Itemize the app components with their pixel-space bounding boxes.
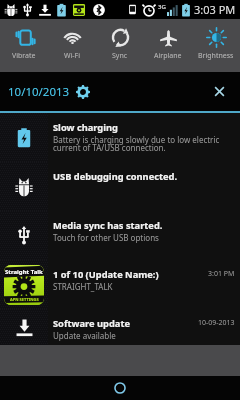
button[interactable]: Media sync has started.: [0, 211, 240, 260]
staticText: STRAIGHT_TALK: [53, 281, 113, 292]
staticText: Airplane: [154, 51, 182, 61]
staticText: Wi-Fi: [64, 51, 81, 61]
button[interactable]: Home: [111, 379, 129, 397]
staticText: 3:03 PM: [194, 2, 236, 17]
button[interactable]: Airplane: [144, 19, 192, 72]
staticText: USB debugging connected.: [53, 170, 178, 183]
staticText: 3:01 PM: [208, 269, 235, 279]
staticText: 3G: [158, 3, 166, 11]
button[interactable]: Slow charging: [0, 113, 240, 162]
staticText: Battery is charging slowly due to low el…: [53, 134, 220, 153]
staticText: Software update: [53, 317, 130, 330]
staticText: 10/10/2013: [8, 84, 70, 100]
button[interactable]: USB debugging connected.: [0, 162, 240, 211]
staticText: 10-09-2013: [198, 318, 235, 328]
staticText: Media sync has started.: [53, 219, 163, 232]
staticText: Slow charging: [53, 121, 118, 134]
staticText: Straight Talk: [5, 268, 43, 276]
staticText: 1 of 10 (Update Name:): [53, 268, 159, 281]
button[interactable]: Clear all notifications: [210, 82, 229, 101]
button[interactable]: Straight Talk: [0, 260, 240, 309]
staticText: APN SETTINGS: [10, 297, 39, 302]
staticText: Sync: [112, 51, 128, 61]
button[interactable]: Wi-Fi: [48, 19, 96, 72]
button[interactable]: Brightness: [192, 19, 240, 72]
staticText: Update available: [53, 330, 116, 341]
button[interactable]: Software update: [0, 309, 240, 345]
staticText: Vibrate: [12, 51, 36, 61]
staticText: Touch for other USB options: [53, 232, 159, 243]
button[interactable]: Vibrate: [0, 19, 48, 72]
button[interactable]: Settings: [76, 85, 90, 99]
button[interactable]: Sync: [96, 19, 144, 72]
staticText: Brightness: [198, 51, 234, 61]
